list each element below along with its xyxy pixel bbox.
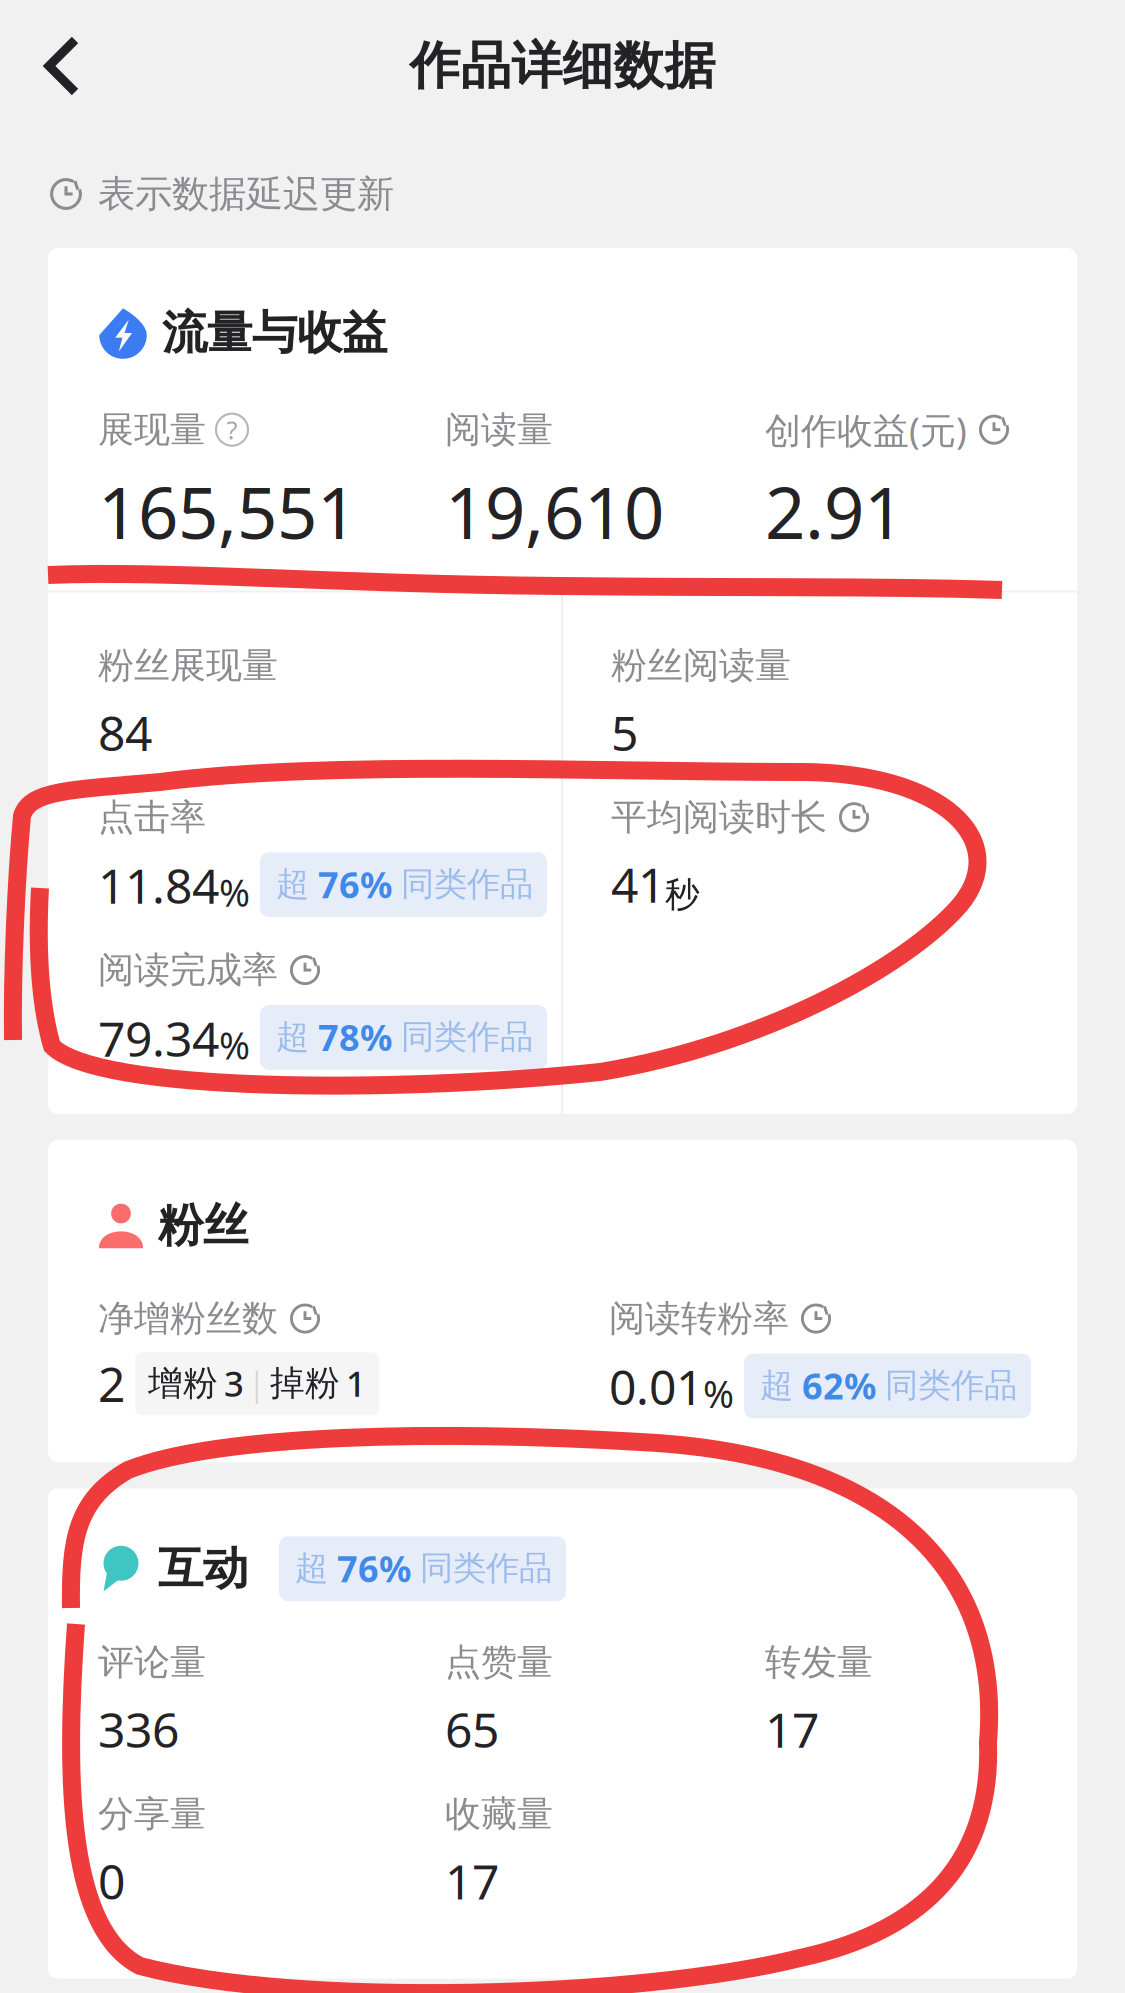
staticText: 粉丝阅读量 — [611, 643, 791, 688]
staticText: 65 — [445, 1697, 499, 1761]
staticText: 超 — [295, 1548, 328, 1589]
staticText: 阅读量 — [445, 408, 553, 452]
staticText: 增粉 — [148, 1362, 218, 1405]
staticText: 同类作品 — [401, 1016, 533, 1057]
staticText: 点击率 — [98, 795, 206, 839]
staticText: 同类作品 — [420, 1548, 552, 1589]
staticText: 1 — [346, 1360, 366, 1406]
staticText: 78% — [318, 1013, 392, 1061]
staticText: 掉粉 — [270, 1362, 340, 1405]
staticText: % — [703, 1369, 734, 1418]
staticText: 表示数据延迟更新 — [98, 171, 394, 217]
staticText: 17 — [445, 1849, 499, 1913]
staticText: 62% — [802, 1362, 876, 1409]
staticText: | — [248, 1362, 266, 1404]
staticText: 超 — [276, 1016, 309, 1057]
staticText: 336 — [98, 1697, 179, 1761]
staticText: 11.84 — [98, 853, 219, 917]
button[interactable]: Back — [0, 9, 114, 123]
staticText: 165,551 — [98, 465, 357, 558]
staticText: 17 — [765, 1697, 819, 1761]
staticText: 79.34 — [98, 1006, 219, 1070]
staticText: 流量与收益 — [162, 305, 387, 361]
staticText: ? — [226, 413, 237, 446]
staticText: 2 — [98, 1352, 125, 1415]
staticText: 互动 — [158, 1541, 248, 1597]
staticText: 0.01 — [609, 1355, 703, 1418]
staticText: 创作收益(元) — [765, 406, 967, 454]
staticText: 2.91 — [765, 465, 904, 558]
staticText: 阅读转粉率 — [609, 1296, 789, 1341]
staticText: 评论量 — [98, 1640, 206, 1684]
staticText: 84 — [98, 700, 152, 764]
staticText: 0 — [98, 1849, 125, 1913]
staticText: 粉丝展现量 — [98, 643, 278, 688]
staticText: 3 — [224, 1360, 244, 1406]
staticText: 展现量 — [98, 408, 206, 452]
staticText: 41 — [611, 852, 665, 916]
staticText: 秒 — [665, 873, 700, 916]
staticText: % — [219, 867, 250, 917]
staticText: 作品详细数据 — [409, 35, 715, 97]
staticText: 点赞量 — [445, 1640, 553, 1684]
staticText: 粉丝 — [158, 1198, 248, 1254]
staticText: 收藏量 — [445, 1792, 553, 1836]
staticText: 同类作品 — [401, 864, 533, 905]
staticText: 超 — [276, 864, 309, 905]
staticText: 平均阅读时长 — [611, 795, 827, 839]
staticText: 5 — [611, 700, 638, 764]
staticText: 转发量 — [765, 1640, 873, 1684]
staticText: 76% — [337, 1544, 411, 1592]
staticText: 阅读完成率 — [98, 948, 278, 992]
staticText: 19,610 — [445, 465, 664, 558]
staticText: 净增粉丝数 — [98, 1296, 278, 1341]
staticText: 超 — [760, 1365, 793, 1406]
staticText: 同类作品 — [885, 1365, 1017, 1406]
staticText: 76% — [318, 860, 392, 908]
staticText: % — [219, 1020, 250, 1070]
staticText: 分享量 — [98, 1792, 206, 1836]
